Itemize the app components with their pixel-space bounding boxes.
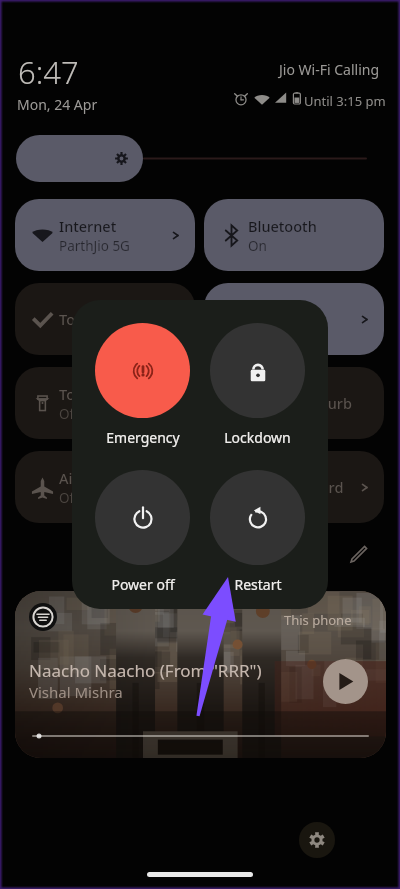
button[interactable]: Torch <box>15 367 195 439</box>
staticText: Torch <box>59 384 98 404</box>
staticText: Naacho Naacho (From "RRR") <box>29 659 262 682</box>
staticText: 6:47 <box>18 51 79 93</box>
button[interactable] <box>16 135 384 182</box>
staticText: Vishal Mishra <box>29 682 123 702</box>
staticText: Power off <box>111 575 175 594</box>
button[interactable] <box>204 283 384 355</box>
button[interactable]: Internet <box>15 199 195 271</box>
button[interactable]: Torch <box>15 283 195 355</box>
button[interactable]: Emergency <box>95 323 190 447</box>
staticText: Screen record <box>248 477 344 497</box>
staticText: ParthJio 5G <box>59 237 130 255</box>
staticText: Emergency <box>106 428 180 447</box>
staticText: Lockdown <box>224 428 291 447</box>
button[interactable]: Power off <box>95 470 190 594</box>
button[interactable]: Edit <box>349 544 369 564</box>
staticText: Until 3:15 pm <box>304 92 386 110</box>
button[interactable]: Settings <box>299 822 335 858</box>
staticText: On <box>248 237 267 255</box>
staticText: Bluetooth <box>248 216 317 236</box>
staticText: Torch <box>59 309 98 329</box>
button[interactable]: Bluetooth <box>204 199 384 271</box>
staticText: Airplane mode <box>59 468 161 488</box>
button[interactable]: Screen record <box>204 451 384 523</box>
button[interactable]: Lockdown <box>210 323 305 447</box>
staticText: Do Not Disturb <box>248 393 352 413</box>
staticText: Jio Wi-Fi Calling <box>279 60 380 79</box>
button[interactable]: Play <box>323 659 368 704</box>
staticText: This phone <box>284 611 352 629</box>
staticText: Restart <box>234 575 282 594</box>
staticText: Mon, 24 Apr <box>17 95 98 114</box>
button[interactable]: Restart <box>210 470 305 594</box>
button[interactable]: This phone <box>15 591 386 758</box>
staticText: Off <box>59 489 79 507</box>
button[interactable]: Do Not Disturb <box>204 367 384 439</box>
button[interactable]: Airplane mode <box>15 451 195 523</box>
staticText: Off <box>59 405 79 423</box>
staticText: Internet <box>59 216 117 236</box>
